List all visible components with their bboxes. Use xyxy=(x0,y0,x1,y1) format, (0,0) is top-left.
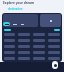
button[interactable] xyxy=(18,33,30,36)
button[interactable] xyxy=(4,57,15,60)
button[interactable] xyxy=(48,39,60,42)
button[interactable] xyxy=(11,22,18,26)
button[interactable] xyxy=(18,39,30,42)
staticText: destination xyxy=(8,7,23,11)
button[interactable] xyxy=(40,14,61,27)
button[interactable] xyxy=(48,51,60,54)
button[interactable] xyxy=(4,39,15,42)
button[interactable] xyxy=(3,22,10,26)
staticText: Explore your dream xyxy=(3,1,35,5)
button[interactable] xyxy=(18,57,30,60)
button[interactable]: Profile xyxy=(52,61,58,69)
button[interactable] xyxy=(33,33,45,36)
button[interactable] xyxy=(33,51,45,54)
button[interactable] xyxy=(48,57,60,60)
button[interactable] xyxy=(4,33,15,36)
button[interactable] xyxy=(48,45,60,48)
button[interactable] xyxy=(19,22,25,26)
button[interactable] xyxy=(33,57,45,60)
button[interactable] xyxy=(18,45,30,48)
button[interactable] xyxy=(33,39,45,42)
button[interactable] xyxy=(33,45,45,48)
button[interactable] xyxy=(48,33,60,36)
button[interactable] xyxy=(3,14,38,27)
button[interactable] xyxy=(4,45,15,48)
button[interactable] xyxy=(18,51,30,54)
button[interactable] xyxy=(4,51,15,54)
